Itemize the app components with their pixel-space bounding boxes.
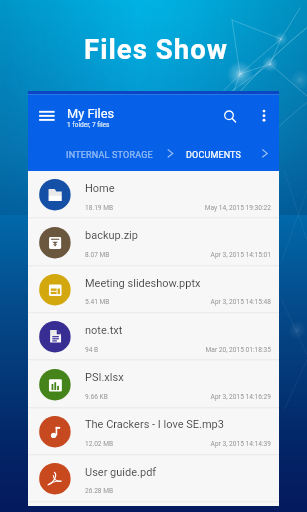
staticText: Apr 3, 2015 14:15:01 bbox=[150, 251, 271, 261]
button[interactable] bbox=[183, 143, 251, 163]
staticText: User guide.pdf bbox=[85, 466, 157, 479]
button[interactable] bbox=[28, 455, 279, 502]
button[interactable]: More options bbox=[258, 105, 270, 126]
staticText: DOCUMENTS bbox=[186, 150, 242, 161]
staticText: backup.zip bbox=[85, 229, 138, 242]
staticText: 12.02 MB bbox=[85, 440, 114, 448]
button[interactable]: Search bbox=[219, 105, 239, 126]
staticText: Apr 3, 2015 14:14:39 bbox=[150, 440, 271, 450]
staticText: note.txt bbox=[85, 324, 123, 337]
staticText: May 14, 2015 19:30:22 bbox=[150, 204, 271, 214]
button[interactable] bbox=[28, 313, 279, 360]
staticText: Apr 3, 2015 14:16:29 bbox=[150, 393, 271, 403]
staticText: INTERNAL STORAGE bbox=[66, 150, 153, 161]
button[interactable] bbox=[28, 266, 279, 313]
staticText: 94 B bbox=[85, 346, 99, 354]
staticText: The Crackers - I love SE.mp3 bbox=[85, 418, 224, 431]
staticText: 26.28 MB bbox=[85, 487, 114, 495]
staticText: Files Show bbox=[84, 33, 229, 65]
button[interactable] bbox=[28, 361, 279, 408]
button[interactable] bbox=[28, 408, 279, 455]
button[interactable]: Open navigation drawer bbox=[37, 107, 57, 125]
button[interactable] bbox=[28, 171, 279, 218]
button[interactable] bbox=[63, 143, 163, 163]
staticText: 9.66 KB bbox=[85, 393, 108, 401]
staticText: 1 folder, 7 files bbox=[67, 121, 110, 129]
staticText: PSI.xlsx bbox=[85, 371, 124, 384]
staticText: My Files bbox=[67, 106, 115, 121]
staticText: 8.07 MB bbox=[85, 251, 110, 259]
staticText: 18.19 MB bbox=[85, 204, 114, 212]
staticText: Mar 20, 2015 01:18:35 bbox=[150, 346, 271, 356]
staticText: Meeting slideshow.pptx bbox=[85, 277, 201, 290]
staticText: Apr 3, 2015 14:15:48 bbox=[150, 298, 271, 308]
staticText: Home bbox=[85, 182, 115, 195]
button[interactable] bbox=[28, 219, 279, 266]
staticText: 5.41 MB bbox=[85, 298, 110, 306]
